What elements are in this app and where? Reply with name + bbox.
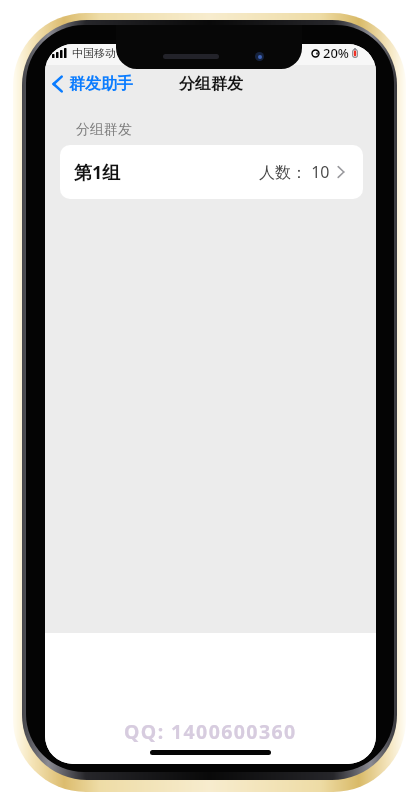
staticText: 20% [323,44,349,62]
other: Back [52,75,63,93]
staticText: QQ: 1400600360 [124,718,297,745]
staticText: 第1组 [74,160,121,185]
button[interactable]: Back [45,70,141,98]
staticText: 分组群发 [179,74,243,94]
button[interactable]: 第1组 [60,145,363,199]
staticText: 分组群发 [76,121,132,139]
staticText: 中国移动 [72,46,116,60]
staticText: 人数： 10 [259,161,330,183]
staticText: 群发助手 [69,74,133,94]
